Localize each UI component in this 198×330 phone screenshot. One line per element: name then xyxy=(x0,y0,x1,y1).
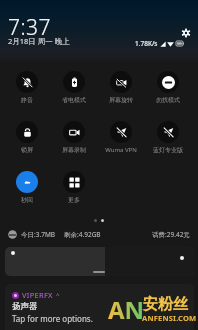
staticText: ANFENSI.COM xyxy=(142,313,197,323)
staticText: AN xyxy=(108,293,145,326)
button[interactable]: Wuma VPN xyxy=(97,112,144,162)
button[interactable]: 省电模式 xyxy=(50,62,97,112)
button[interactable]: 屏幕旋转 xyxy=(97,62,144,112)
staticText: 蓝灯专业版 xyxy=(153,146,183,154)
staticText: 屏幕录制 xyxy=(62,146,86,154)
button[interactable]: 蓝灯专业版 xyxy=(144,112,191,162)
staticText: 勿扰模式 xyxy=(156,96,180,104)
button[interactable]: 屏幕录制 xyxy=(50,112,97,162)
button[interactable]: VIPERFX xyxy=(5,284,194,330)
staticText: 锁屏 xyxy=(21,146,33,154)
staticText: 扬声器 xyxy=(12,301,38,312)
staticText: 1.78K/s xyxy=(135,39,158,48)
staticText: 2月18日 周一 晚上 xyxy=(8,36,70,46)
staticText: VIPERFX xyxy=(22,290,53,300)
staticText: 省电模式 xyxy=(62,96,86,104)
button[interactable]: 更多 xyxy=(50,162,97,212)
staticText: 安粉丝 xyxy=(143,295,188,314)
button[interactable]: 勿扰模式 xyxy=(144,62,191,112)
staticText: 剩余:4.92GB xyxy=(64,230,101,239)
staticText: 今日:3.7MB xyxy=(21,230,56,239)
staticText: Tap for more options. xyxy=(12,313,93,324)
button[interactable]: 静音 xyxy=(3,62,50,112)
staticText: 7:37 xyxy=(8,13,52,42)
button[interactable]: 秒回 xyxy=(3,162,50,212)
staticText: 话费:29.42元 xyxy=(152,230,190,239)
staticText: 屏幕旋转 xyxy=(109,96,133,104)
button[interactable] xyxy=(5,247,194,276)
staticText: ^ xyxy=(56,291,60,299)
staticText: 更多 xyxy=(68,196,80,204)
button[interactable]: 锁屏 xyxy=(3,112,50,162)
staticText: Wuma VPN xyxy=(105,146,137,154)
button[interactable]: Settings xyxy=(181,28,191,38)
staticText: 静音 xyxy=(21,96,33,104)
staticText: 秒回 xyxy=(21,196,33,204)
